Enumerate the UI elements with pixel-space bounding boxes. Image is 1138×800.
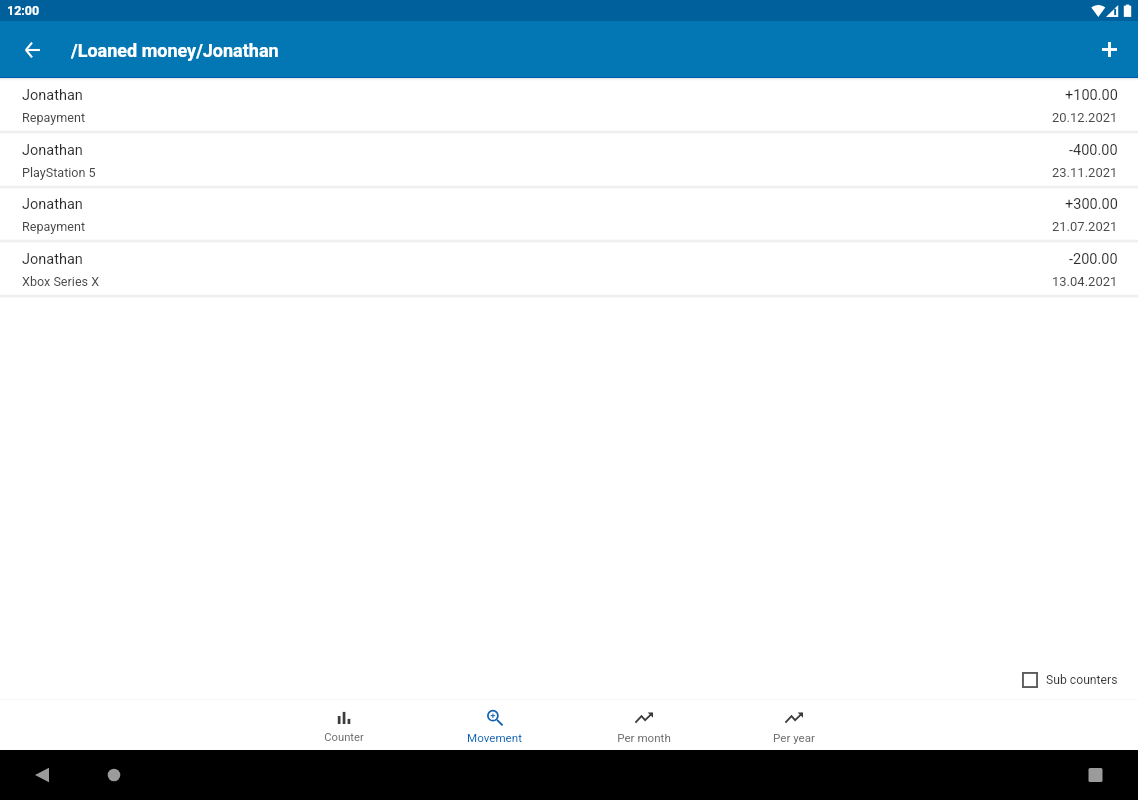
- staticText: Jonathan: [22, 196, 83, 213]
- button[interactable]: Per year: [719, 700, 869, 750]
- staticText: 13.04.2021: [1052, 274, 1118, 289]
- staticText: Per year: [773, 731, 815, 745]
- staticText: Sub counters: [1046, 673, 1118, 687]
- staticText: 20.12.2021: [1052, 110, 1118, 125]
- staticText: Counter: [324, 731, 364, 744]
- button[interactable]: Jonathan: [0, 186, 1138, 242]
- staticText: 23.11.2021: [1052, 165, 1118, 180]
- staticText: Jonathan: [22, 251, 83, 268]
- staticText: Repayment: [22, 219, 86, 234]
- staticText: /Loaned money/Jonathan: [71, 40, 279, 61]
- staticText: +100.00: [1065, 87, 1118, 104]
- staticText: -400.00: [1069, 142, 1118, 159]
- staticText: Repayment: [22, 110, 86, 125]
- staticText: -200.00: [1069, 251, 1118, 268]
- staticText: +300.00: [1065, 196, 1118, 213]
- button[interactable]: Per month: [569, 700, 719, 750]
- button[interactable]: Back: [12, 29, 52, 69]
- button[interactable]: Add: [1089, 29, 1129, 69]
- button[interactable]: Counter: [269, 700, 419, 750]
- staticText: Jonathan: [22, 142, 83, 159]
- button[interactable]: Sub counters: [1022, 672, 1118, 688]
- staticText: 12:00: [7, 3, 40, 18]
- staticText: Per month: [617, 731, 671, 745]
- button[interactable]: Movement: [419, 700, 569, 750]
- button[interactable]: Jonathan: [0, 77, 1138, 133]
- button[interactable]: Jonathan: [0, 241, 1138, 297]
- staticText: Movement: [467, 731, 522, 745]
- staticText: Xbox Series X: [22, 274, 100, 289]
- staticText: Jonathan: [22, 87, 83, 104]
- staticText: PlayStation 5: [22, 165, 96, 180]
- button[interactable]: Jonathan: [0, 132, 1138, 188]
- staticText: 21.07.2021: [1052, 219, 1118, 234]
